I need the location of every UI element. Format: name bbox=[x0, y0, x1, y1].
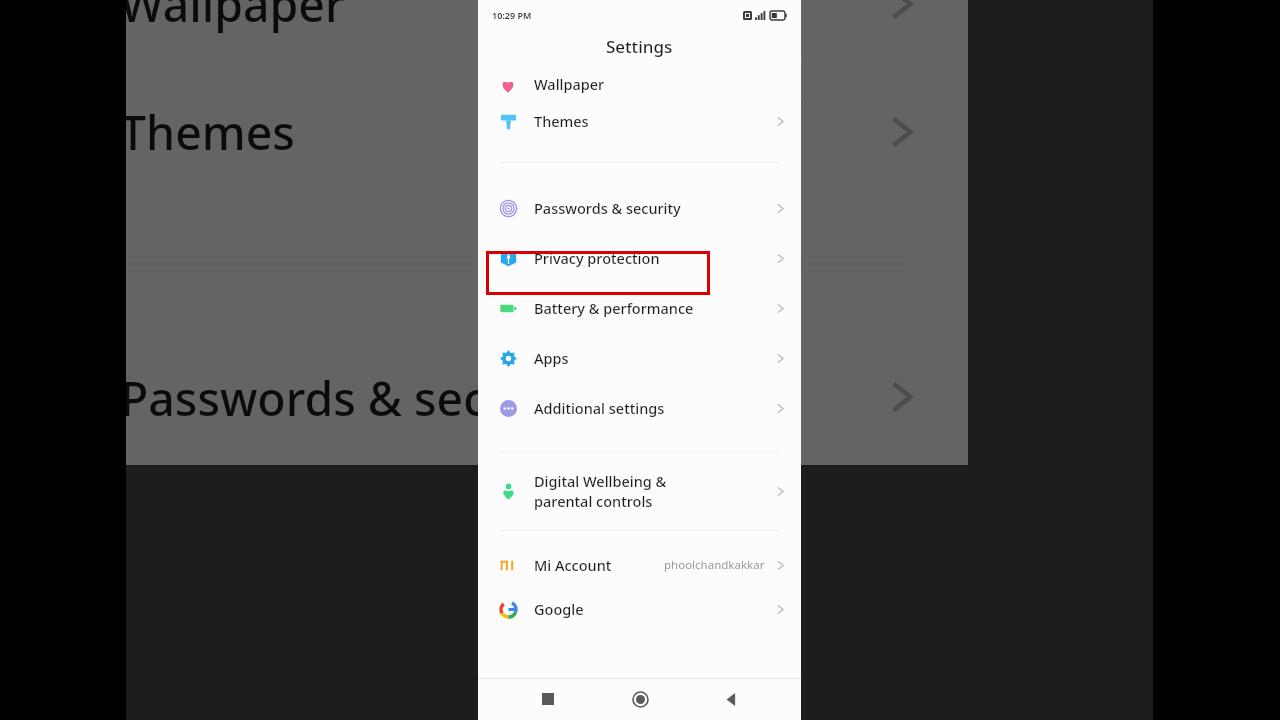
button[interactable]: Google bbox=[478, 587, 801, 631]
staticText: Mi Account bbox=[534, 555, 612, 575]
staticText: Google bbox=[534, 599, 584, 619]
button[interactable]: Battery & performance bbox=[478, 283, 801, 333]
staticText: Passwords & security bbox=[126, 366, 590, 429]
staticText: parental controls bbox=[534, 491, 653, 511]
staticText: Privacy protection bbox=[534, 248, 660, 268]
button[interactable]: Back bbox=[710, 678, 752, 720]
staticText: Apps bbox=[534, 348, 569, 368]
button[interactable]: Mi Account bbox=[478, 543, 801, 587]
staticText: Battery & performance bbox=[534, 298, 694, 318]
staticText: Additional settings bbox=[534, 398, 665, 418]
button[interactable] bbox=[486, 251, 710, 295]
button[interactable]: Additional settings bbox=[478, 383, 801, 433]
button[interactable]: Home bbox=[619, 678, 661, 720]
staticText: KINEMASTER bbox=[742, 87, 802, 100]
staticText: 10:29 PM bbox=[492, 9, 532, 21]
button[interactable]: Recent apps bbox=[527, 678, 569, 720]
button[interactable]: Passwords & security bbox=[478, 183, 801, 233]
staticText: Passwords & security bbox=[534, 198, 681, 218]
staticText: Wallpaper bbox=[534, 74, 605, 94]
button[interactable]: Digital Wellbeing & bbox=[478, 460, 801, 522]
staticText: phoolchandkakkar bbox=[664, 557, 765, 573]
staticText: Wallpaper bbox=[126, 0, 345, 35]
staticText: Digital Wellbeing & bbox=[534, 471, 667, 491]
button[interactable]: Privacy protection bbox=[478, 233, 801, 283]
button[interactable]: Apps bbox=[478, 333, 801, 383]
staticText: Themes bbox=[534, 111, 589, 131]
staticText: Settings bbox=[606, 35, 673, 58]
button[interactable]: Wallpaper bbox=[478, 68, 801, 94]
staticText: Themes bbox=[126, 100, 295, 163]
button[interactable]: Themes bbox=[478, 94, 801, 148]
